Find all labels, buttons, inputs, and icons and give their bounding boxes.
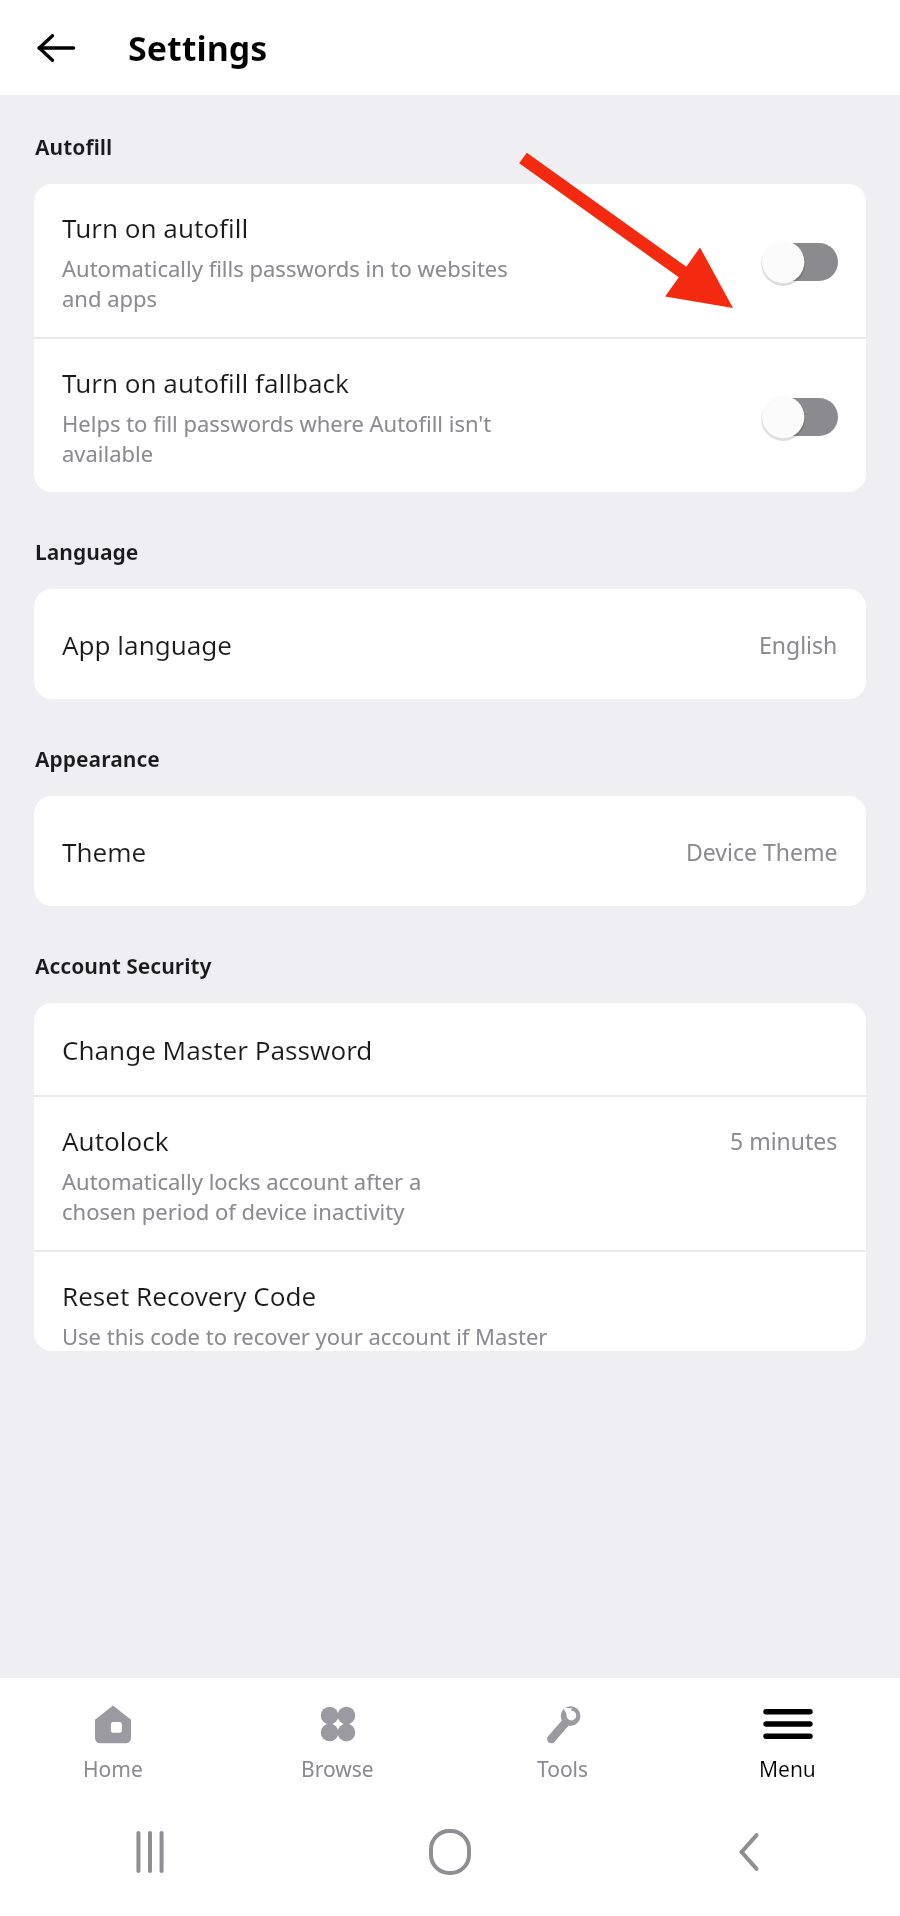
staticText: Theme bbox=[62, 834, 686, 869]
button[interactable]: Turn on autofill bbox=[34, 184, 866, 337]
staticText: Menu bbox=[759, 1755, 816, 1784]
staticText: Automatically locks account after a chos… bbox=[62, 1166, 422, 1226]
button[interactable]: Tools bbox=[450, 1678, 675, 1806]
button[interactable]: Change Master Password bbox=[34, 1003, 866, 1095]
staticText: Settings bbox=[128, 25, 268, 71]
button[interactable]: Autolock bbox=[34, 1097, 866, 1250]
staticText: Change Master Password bbox=[62, 1032, 373, 1067]
staticText: Use this code to recover your account if… bbox=[62, 1321, 548, 1351]
staticText: Appearance bbox=[35, 745, 160, 774]
button[interactable]: Theme bbox=[34, 796, 866, 906]
button[interactable]: Browse bbox=[225, 1678, 450, 1806]
staticText: Tools bbox=[537, 1755, 589, 1784]
button[interactable]: Home bbox=[0, 1678, 225, 1806]
button[interactable]: Toggle bbox=[762, 395, 838, 439]
staticText: Turn on autofill bbox=[62, 210, 249, 245]
staticText: Account Security bbox=[35, 952, 212, 981]
button[interactable]: Back bbox=[22, 14, 90, 82]
staticText: Turn on autofill fallback bbox=[62, 365, 349, 400]
staticText: App language bbox=[62, 627, 759, 662]
staticText: English bbox=[759, 629, 838, 660]
staticText: Home bbox=[83, 1755, 143, 1784]
staticText: Autolock bbox=[62, 1123, 730, 1158]
button[interactable]: Menu bbox=[675, 1678, 900, 1806]
staticText: Helps to fill passwords where Autofill i… bbox=[62, 408, 492, 468]
staticText: Language bbox=[35, 538, 139, 567]
staticText: Autofill bbox=[35, 133, 113, 162]
staticText: Browse bbox=[301, 1755, 374, 1784]
button[interactable]: Toggle bbox=[762, 240, 838, 284]
button[interactable]: Turn on autofill fallback bbox=[34, 339, 866, 492]
staticText: 5 minutes bbox=[730, 1125, 838, 1156]
staticText: Automatically fills passwords in to webs… bbox=[62, 253, 508, 313]
button[interactable]: App language bbox=[34, 589, 866, 699]
staticText: Device Theme bbox=[686, 836, 838, 867]
staticText: Reset Recovery Code bbox=[62, 1278, 317, 1313]
button[interactable]: Reset Recovery Code bbox=[34, 1252, 866, 1351]
